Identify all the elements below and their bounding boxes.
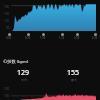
button[interactable]: Lap 2:30 [90, 33, 100, 40]
button[interactable]: 129 [0, 68, 47, 82]
staticText: 120 [4, 19, 10, 23]
staticText: 200 [4, 87, 10, 91]
staticText: 1:00 [40, 36, 46, 40]
button[interactable]: Lap 0:00 [4, 33, 14, 40]
staticText: 129 [17, 68, 30, 78]
staticText: 90 [6, 26, 10, 30]
staticText: 1:30 [59, 36, 65, 40]
staticText: 最大 [71, 78, 77, 82]
staticText: 155 [67, 68, 80, 78]
staticText: 平均 [21, 78, 27, 82]
staticText: 0:00 [6, 36, 12, 40]
staticText: 2:30 [92, 36, 98, 40]
button[interactable]: Lap 2:00 [72, 33, 82, 40]
button[interactable]: Lap 1:30 [57, 33, 67, 40]
button[interactable]: Lap 0:30 [23, 33, 33, 40]
staticText: 0:30 [25, 36, 31, 40]
button[interactable]: 155 [47, 68, 100, 82]
staticText: 心拍数 (bpm) [3, 59, 29, 65]
button[interactable]: Lap 1:00 [38, 33, 48, 40]
staticText: 100 [4, 94, 10, 98]
staticText: 180 [4, 5, 10, 9]
staticText: 150 [4, 12, 10, 16]
staticText: 2:00 [74, 36, 80, 40]
